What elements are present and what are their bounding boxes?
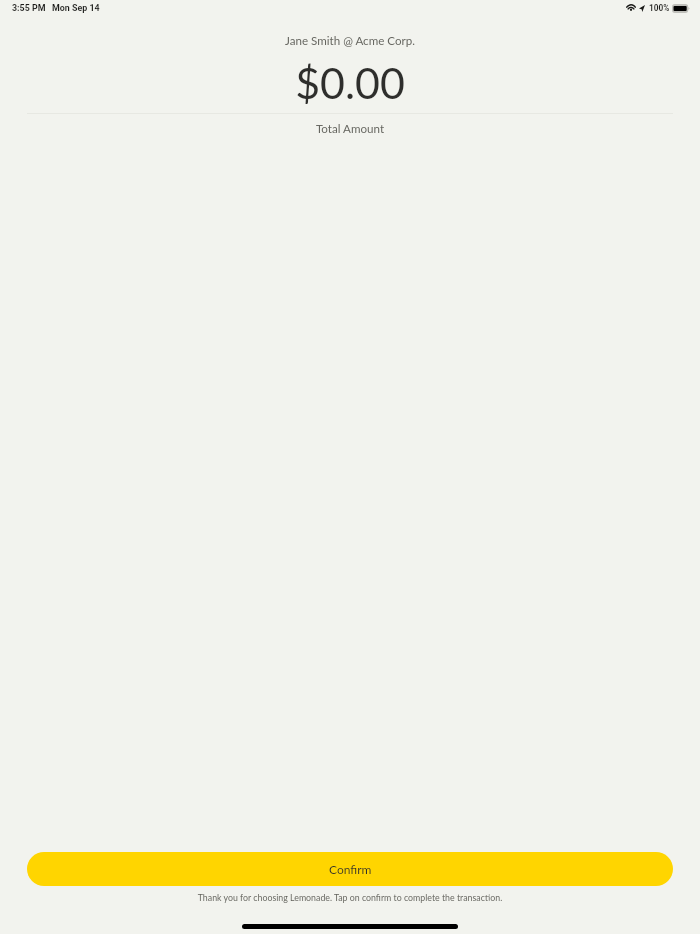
staticText: $0.00 (27, 57, 673, 108)
button[interactable]: Confirm (27, 852, 673, 886)
other: Battery full (672, 4, 690, 13)
button[interactable]: $0.00 (27, 57, 673, 114)
staticText: 100% (649, 3, 670, 13)
staticText: Mon Sep 14 (52, 3, 100, 13)
staticText: Jane Smith @ Acme Corp. (0, 34, 700, 48)
staticText: Thank you for choosing Lemonade. Tap on … (0, 892, 700, 903)
other: Wi-Fi connected (626, 4, 636, 11)
other: Location services active (639, 5, 645, 12)
staticText: Total Amount (0, 122, 700, 136)
staticText: 3:55 PM (12, 3, 46, 13)
staticText: Confirm (329, 862, 372, 876)
